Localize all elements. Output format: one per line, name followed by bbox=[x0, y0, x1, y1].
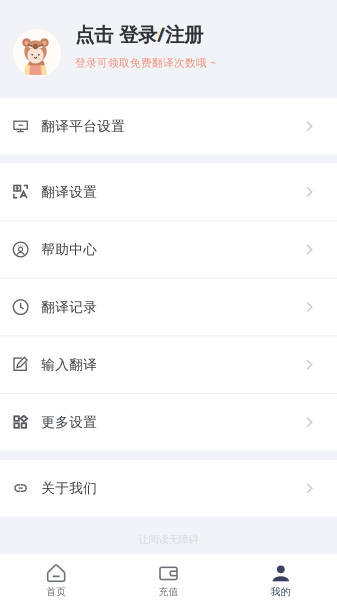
button[interactable]: 首页 bbox=[0, 554, 112, 600]
button[interactable]: 我的 bbox=[225, 554, 337, 600]
staticText: 关于我们 bbox=[41, 480, 97, 497]
button[interactable]: 翻译设置 bbox=[0, 164, 337, 220]
button[interactable]: 输入翻译 bbox=[0, 336, 337, 393]
staticText: 点击 登录/注册 bbox=[75, 21, 203, 47]
staticText: 更多设置 bbox=[41, 414, 97, 431]
staticText: 让阅读无障碍 bbox=[138, 533, 198, 546]
button[interactable]: 翻译记录 bbox=[0, 279, 337, 335]
staticText: 首页 bbox=[46, 586, 66, 598]
button[interactable]: 帮助中心 bbox=[0, 221, 337, 278]
button[interactable]: 点击 登录/注册 bbox=[0, 0, 337, 98]
button[interactable]: 充值 bbox=[112, 554, 225, 600]
staticText: 充值 bbox=[158, 586, 178, 598]
staticText: 输入翻译 bbox=[41, 356, 97, 373]
staticText: 帮助中心 bbox=[41, 241, 97, 258]
staticText: 我的 bbox=[271, 586, 291, 598]
button[interactable]: 更多设置 bbox=[0, 394, 337, 451]
staticText: 翻译平台设置 bbox=[41, 118, 125, 135]
button[interactable]: 关于我们 bbox=[0, 460, 337, 517]
staticText: 翻译记录 bbox=[41, 298, 97, 316]
button[interactable]: 翻译平台设置 bbox=[0, 98, 337, 155]
staticText: 翻译设置 bbox=[41, 183, 97, 200]
staticText: 登录可领取免费翻译次数哦 ~ bbox=[75, 55, 216, 70]
